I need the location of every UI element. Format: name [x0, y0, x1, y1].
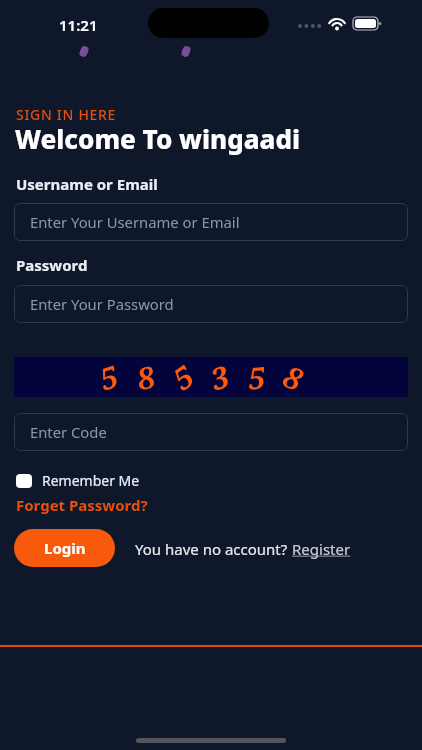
staticText: 5: [246, 356, 267, 398]
staticText: Username or Email: [16, 174, 158, 194]
staticText: SIGN IN HERE: [16, 105, 117, 124]
staticText: Password: [16, 255, 88, 275]
staticText: 8: [278, 355, 309, 399]
staticText: Enter Code: [30, 422, 107, 442]
button[interactable]: Forget Password?: [16, 495, 148, 515]
button[interactable]: Login: [14, 529, 115, 567]
staticText: 5: [94, 355, 123, 399]
staticText: 11:21: [59, 15, 98, 35]
button[interactable]: Enter Code: [14, 413, 408, 451]
button[interactable]: Remember Me: [16, 471, 140, 490]
staticText: Login: [44, 538, 86, 558]
staticText: Enter Your Username or Email: [30, 212, 240, 232]
staticText: You have no account?: [135, 539, 292, 559]
staticText: Enter Your Password: [30, 294, 174, 314]
staticText: 5: [164, 356, 201, 398]
button[interactable]: Enter Your Password: [14, 285, 408, 323]
staticText: Remember Me: [42, 471, 140, 490]
staticText: 3: [205, 355, 234, 399]
staticText: 8: [133, 356, 158, 398]
button[interactable]: Register: [292, 539, 351, 559]
button[interactable]: Enter Your Username or Email: [14, 203, 408, 241]
staticText: Welcome To wingaadi: [15, 121, 301, 156]
